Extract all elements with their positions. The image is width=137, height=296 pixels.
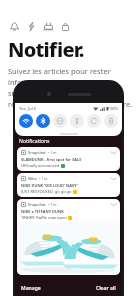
staticText: Notifier. [8,36,84,63]
staticText: Suivez les articles pour rester informé … [8,66,133,109]
staticText: NIKE x TIFFANY DUNK [21,209,64,214]
staticText: SLAMDUNK - first spot for SALE [21,157,82,162]
button[interactable]: Nike [17,173,120,197]
button[interactable]: Battery saver [104,114,118,128]
staticText: Nike [28,176,37,181]
staticText: Notifications [19,138,50,145]
staticText: Clear all [96,285,116,292]
staticText: 'SNKRS' Raffle now open [21,215,67,220]
button[interactable]: Clear all [95,284,117,293]
staticText: Tue, Jul 6 [19,106,37,111]
staticText: JUST RESTOCKED, go go go [21,189,72,194]
staticText: Officially announced [21,163,60,168]
button[interactable]: Snapchat [17,147,120,171]
button[interactable]: Do not disturb [53,114,67,128]
staticText: • 1m [48,150,57,155]
staticText: • 1m [48,202,57,207]
staticText: Manage [21,285,41,292]
button[interactable]: Flashlight [70,114,84,128]
button[interactable]: Auto-rotate [87,114,101,128]
button[interactable]: Wi-Fi [19,114,33,128]
button[interactable]: Snapchat [17,199,120,275]
staticText: Snapchat [28,150,46,155]
staticText: 100% [109,106,118,111]
staticText: Snapchat [28,202,46,207]
staticText: NIKE DUNK 'DIS LOUD' NAVY' [21,183,78,188]
button[interactable]: Manage [20,284,42,293]
staticText: • 1m [39,176,48,181]
button[interactable]: Bluetooth [36,114,50,128]
